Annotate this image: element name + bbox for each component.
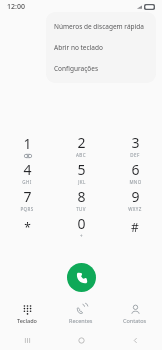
staticText: JKL bbox=[78, 179, 86, 185]
button[interactable]: 4 bbox=[0, 159, 54, 186]
staticText: + bbox=[80, 233, 83, 239]
staticText: MNO bbox=[129, 179, 142, 185]
staticText: * bbox=[24, 219, 31, 235]
button[interactable]: 7 bbox=[0, 186, 54, 213]
button[interactable]: Início bbox=[54, 330, 108, 350]
staticText: 3 bbox=[131, 133, 140, 152]
button[interactable]: Teclado bbox=[0, 301, 54, 327]
button[interactable]: Voltar bbox=[108, 330, 162, 350]
staticText: 1 bbox=[23, 134, 32, 153]
button[interactable]: 1 bbox=[0, 132, 54, 159]
staticText: 5 bbox=[77, 160, 86, 179]
button[interactable]: 3 bbox=[108, 132, 162, 159]
staticText: 6 bbox=[131, 160, 140, 179]
staticText: Configurações bbox=[54, 64, 99, 73]
button[interactable]: Recentes bbox=[0, 330, 54, 350]
button[interactable]: Configurações bbox=[46, 58, 156, 79]
staticText: WXYZ bbox=[128, 206, 142, 212]
staticText: 4 bbox=[23, 160, 32, 179]
staticText: Abrir no teclado bbox=[54, 43, 103, 52]
staticText: # bbox=[131, 219, 139, 235]
staticText: TUV bbox=[76, 206, 86, 212]
staticText: Contatos bbox=[123, 317, 147, 324]
staticText: Teclado bbox=[17, 317, 37, 324]
button[interactable]: 6 bbox=[108, 159, 162, 186]
staticText: ABC bbox=[76, 152, 86, 158]
staticText: 2 bbox=[77, 133, 86, 152]
staticText: 9 bbox=[131, 187, 140, 206]
button[interactable]: # bbox=[108, 213, 162, 240]
staticText: 0 bbox=[77, 214, 86, 233]
staticText: 7 bbox=[23, 187, 32, 206]
staticText: GHI bbox=[22, 179, 32, 185]
button[interactable]: 8 bbox=[54, 186, 108, 213]
button[interactable]: Recentes bbox=[54, 301, 108, 327]
staticText: DEF bbox=[130, 152, 140, 158]
button[interactable]: 5 bbox=[54, 159, 108, 186]
staticText: 12:00 bbox=[7, 2, 25, 12]
staticText: PQRS bbox=[20, 206, 34, 212]
staticText: Recentes bbox=[69, 317, 93, 324]
button[interactable]: * bbox=[0, 213, 54, 240]
button[interactable]: Abrir no teclado bbox=[46, 37, 156, 58]
button[interactable]: Contatos bbox=[108, 301, 162, 327]
button[interactable]: 0 bbox=[54, 213, 108, 240]
button[interactable]: 2 bbox=[54, 132, 108, 159]
staticText: Números de discagem rápida bbox=[54, 22, 144, 31]
button[interactable]: 9 bbox=[108, 186, 162, 213]
staticText: 8 bbox=[77, 187, 86, 206]
button[interactable]: Números de discagem rápida bbox=[46, 16, 156, 37]
button[interactable]: Ligar bbox=[67, 263, 96, 292]
